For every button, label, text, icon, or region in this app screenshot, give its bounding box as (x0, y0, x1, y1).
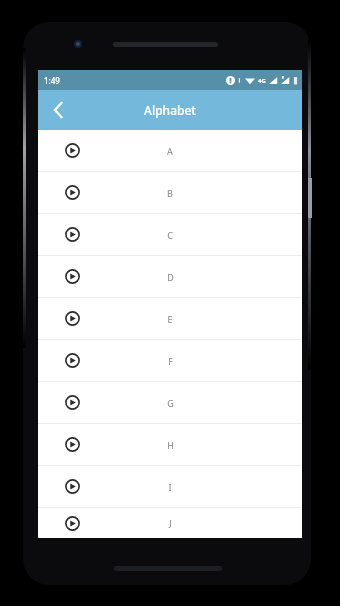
staticText: E (167, 313, 173, 325)
button[interactable]: A (38, 130, 302, 171)
staticText: J (169, 517, 172, 529)
staticText: 1:49 (44, 75, 60, 86)
staticText: A (167, 145, 173, 157)
staticText: Alphabet (144, 102, 196, 118)
button[interactable]: E (38, 298, 302, 339)
staticText: B (167, 187, 173, 199)
button[interactable]: I (38, 466, 302, 507)
button[interactable]: B (38, 172, 302, 213)
staticText: 4G (258, 77, 266, 85)
button[interactable]: F (38, 340, 302, 381)
staticText: C (167, 229, 173, 241)
staticText: I (168, 481, 172, 493)
button[interactable]: C (38, 214, 302, 255)
staticText: F (168, 355, 173, 367)
button[interactable]: G (38, 382, 302, 423)
staticText: D (167, 271, 174, 283)
button[interactable]: H (38, 424, 302, 465)
button[interactable]: Back (38, 90, 78, 130)
staticText: G (167, 397, 174, 409)
staticText: H (167, 439, 174, 451)
button[interactable]: D (38, 256, 302, 297)
button[interactable]: J (38, 508, 302, 538)
